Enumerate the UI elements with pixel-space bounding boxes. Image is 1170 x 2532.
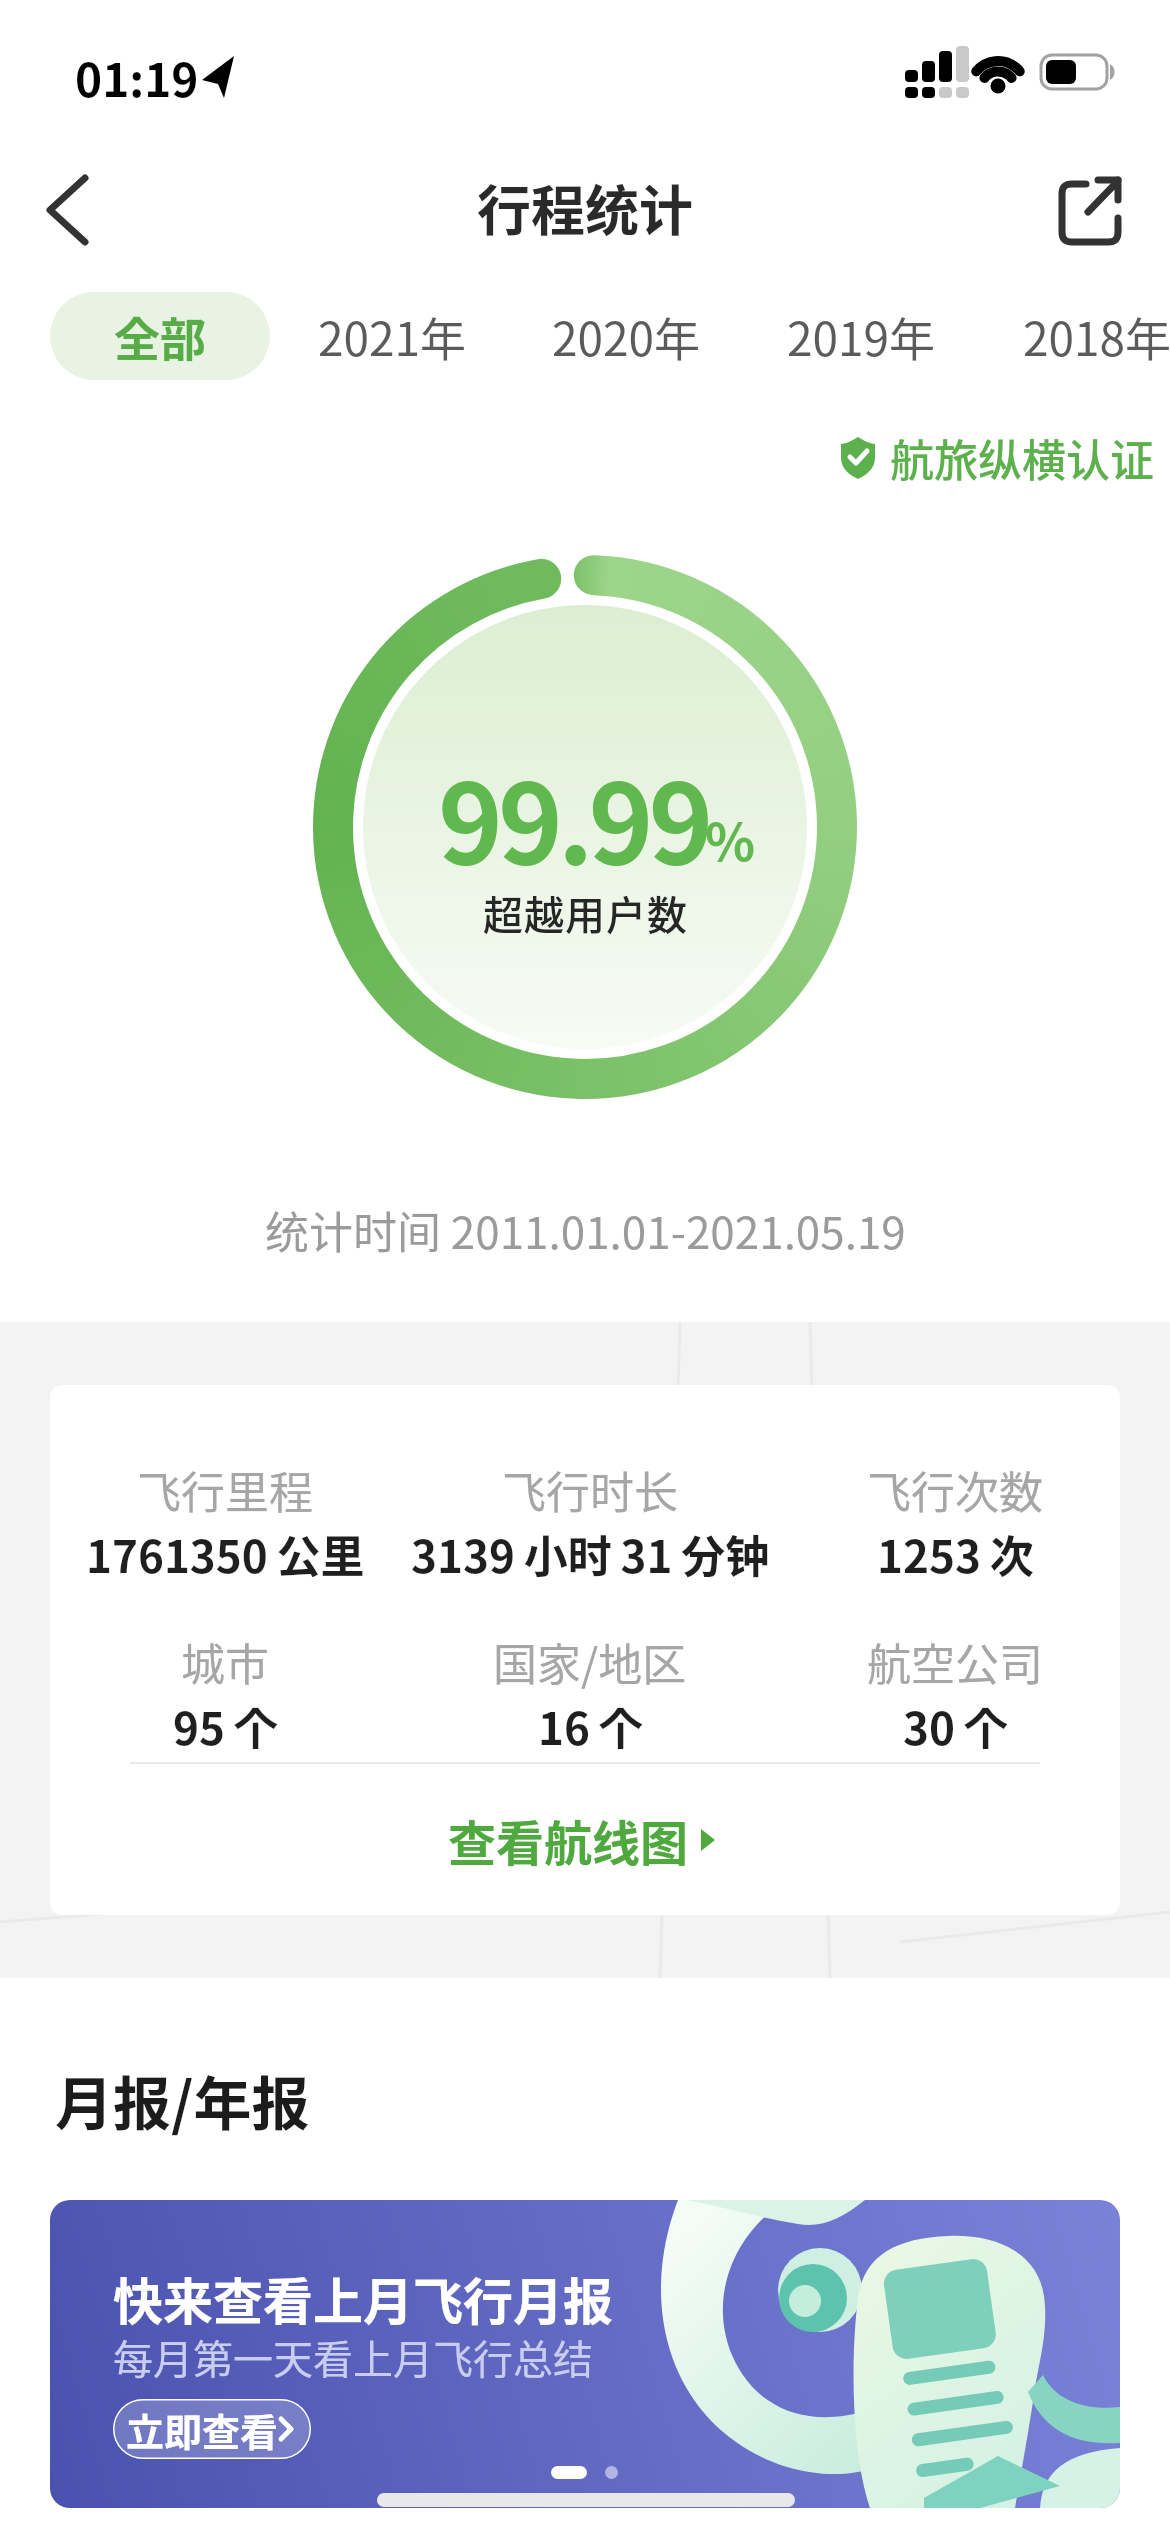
staticText: 航旅纵横认证: [890, 426, 1154, 486]
staticText: 立即查看: [126, 2402, 279, 2457]
button[interactable]: 立即查看: [113, 2399, 311, 2459]
staticText: 超越用户数: [483, 884, 688, 942]
staticText: 国家/地区: [493, 1630, 687, 1694]
staticText: 行程统计: [477, 168, 693, 246]
staticText: 月报/年报: [55, 2058, 310, 2142]
button[interactable]: 查看航线图: [50, 1805, 1120, 1885]
button[interactable]: 2019年: [751, 292, 971, 380]
button[interactable]: [30, 165, 110, 255]
staticText: 快来查看上月飞行月报: [113, 2262, 613, 2334]
staticText: 飞行次数: [867, 1458, 1043, 1522]
button[interactable]: 全部: [50, 292, 270, 380]
staticText: 2019年: [787, 303, 936, 370]
staticText: 2021年: [318, 303, 467, 370]
button[interactable]: 航旅纵横认证: [840, 425, 1130, 485]
staticText: 统计时间 2011.01.01-2021.05.19: [265, 1198, 906, 1262]
button[interactable]: 快来查看上月飞行月报: [50, 2200, 1120, 2508]
staticText: 航空公司: [867, 1630, 1043, 1694]
staticText: 查看航线图: [448, 1805, 689, 1875]
button[interactable]: 2020年: [516, 292, 736, 380]
staticText: 飞行时长: [502, 1458, 678, 1522]
staticText: 1761350 公里: [86, 1522, 365, 1586]
staticText: 城市: [181, 1630, 269, 1694]
staticText: 3139 小时 31 分钟: [411, 1522, 770, 1586]
staticText: 16 个: [538, 1694, 643, 1758]
button[interactable]: [1050, 165, 1130, 255]
staticText: 2018年: [1023, 303, 1170, 370]
staticText: 99.99: [438, 736, 709, 895]
button[interactable]: 2021年: [282, 292, 502, 380]
staticText: 1253 次: [877, 1522, 1034, 1586]
staticText: 每月第一天看上月飞行总结: [113, 2328, 593, 2386]
staticText: %: [705, 801, 756, 876]
staticText: 全部: [114, 303, 206, 370]
staticText: 2020年: [552, 303, 701, 370]
button[interactable]: 2018年: [987, 292, 1170, 380]
staticText: 飞行里程: [137, 1458, 313, 1522]
staticText: 01:19: [75, 44, 199, 111]
staticText: 95 个: [173, 1694, 278, 1758]
staticText: 30 个: [903, 1694, 1008, 1758]
